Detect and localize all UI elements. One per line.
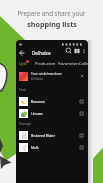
- button[interactable]: More options: [81, 48, 87, 54]
- button[interactable]: Bruisend Water: [19, 129, 83, 141]
- button[interactable]: Colle: [79, 58, 88, 69]
- staticText: Toon winkelmandsom: [31, 72, 63, 76]
- staticText: Delhaize: [31, 77, 44, 81]
- staticText: Producten: [35, 61, 56, 67]
- button[interactable]: Switch view: [73, 47, 81, 55]
- button[interactable]: Search: [65, 47, 73, 55]
- staticText: Lijst: [19, 61, 27, 67]
- button[interactable]: Check Bruisend Water: [80, 134, 83, 137]
- staticText: Limoen: [31, 111, 43, 115]
- staticText: shopping lists: [27, 19, 77, 29]
- button[interactable]: Check Limoen: [80, 112, 83, 115]
- staticText: Overige: [19, 122, 31, 126]
- button[interactable]: Favorieten: [58, 58, 79, 69]
- staticText: Colle: [79, 61, 88, 67]
- staticText: Prepare and share your: [17, 9, 86, 17]
- staticText: Favorieten: [58, 61, 79, 67]
- button[interactable]: Close: [79, 73, 85, 79]
- staticText: Bruisend Water: [31, 133, 56, 137]
- button[interactable]: Toon winkelmandsom: [19, 70, 85, 82]
- button[interactable]: Bananen: [19, 95, 83, 107]
- button[interactable]: Back: [18, 49, 26, 57]
- button[interactable]: Check Melk: [80, 146, 83, 149]
- button[interactable]: Melk: [19, 141, 83, 153]
- button[interactable]: Check Bananen: [80, 100, 83, 103]
- staticText: Fruit: [19, 88, 26, 92]
- button[interactable]: Producten: [35, 58, 56, 69]
- staticText: Melk: [31, 145, 39, 149]
- button[interactable]: Limoen: [19, 107, 83, 119]
- staticText: Bananen: [31, 99, 45, 103]
- staticText: Delhaize: [32, 50, 51, 56]
- button[interactable]: Lijst: [18, 58, 27, 69]
